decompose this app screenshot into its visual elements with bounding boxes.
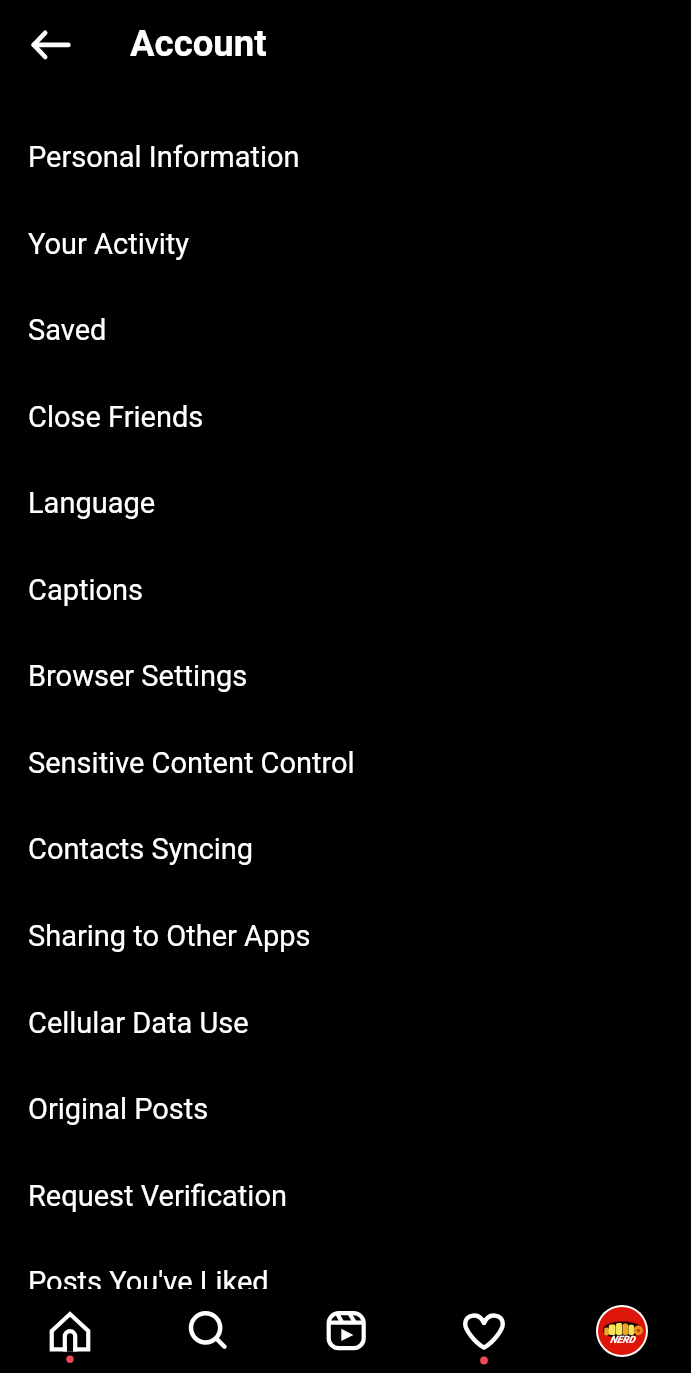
button[interactable]: Contacts Syncing bbox=[0, 805, 691, 892]
staticText: Saved bbox=[28, 313, 107, 347]
button[interactable]: Search bbox=[139, 1289, 277, 1373]
button[interactable]: Sensitive Content Control bbox=[0, 719, 691, 806]
staticText: NERD bbox=[610, 1334, 635, 1346]
button[interactable]: Back bbox=[27, 21, 75, 69]
button[interactable]: Reels bbox=[277, 1289, 415, 1373]
button[interactable]: Sharing to Other Apps bbox=[0, 892, 691, 979]
button[interactable]: Personal Information bbox=[0, 113, 691, 200]
staticText: Language bbox=[28, 486, 156, 520]
staticText: Posts You've Liked bbox=[28, 1265, 269, 1289]
staticText: Cellular Data Use bbox=[28, 1006, 249, 1040]
staticText: Captions bbox=[28, 573, 143, 607]
staticText: Your Activity bbox=[28, 227, 189, 261]
button[interactable]: Close Friends bbox=[0, 373, 691, 460]
staticText: Personal Information bbox=[28, 140, 300, 174]
button[interactable]: Home bbox=[0, 1289, 139, 1373]
button[interactable]: Your Activity bbox=[0, 200, 691, 287]
button[interactable]: Cellular Data Use bbox=[0, 979, 691, 1066]
button[interactable]: Browser Settings bbox=[0, 632, 691, 719]
staticText: Sensitive Content Control bbox=[28, 746, 355, 780]
button[interactable]: Notifications bbox=[415, 1289, 553, 1373]
button[interactable]: Posts You've Liked bbox=[0, 1238, 691, 1289]
staticText: Sharing to Other Apps bbox=[28, 919, 311, 953]
staticText: Close Friends bbox=[28, 400, 204, 434]
staticText: Contacts Syncing bbox=[28, 832, 254, 866]
button[interactable]: Request Verification bbox=[0, 1152, 691, 1239]
button[interactable]: Profile bbox=[553, 1289, 691, 1373]
button[interactable]: Saved bbox=[0, 286, 691, 373]
staticText: Browser Settings bbox=[28, 659, 248, 693]
staticText: Account bbox=[130, 22, 267, 65]
button[interactable]: Captions bbox=[0, 546, 691, 633]
staticText: Original Posts bbox=[28, 1092, 209, 1126]
staticText: Request Verification bbox=[28, 1179, 287, 1213]
button[interactable]: Original Posts bbox=[0, 1065, 691, 1152]
button[interactable]: Language bbox=[0, 459, 691, 546]
